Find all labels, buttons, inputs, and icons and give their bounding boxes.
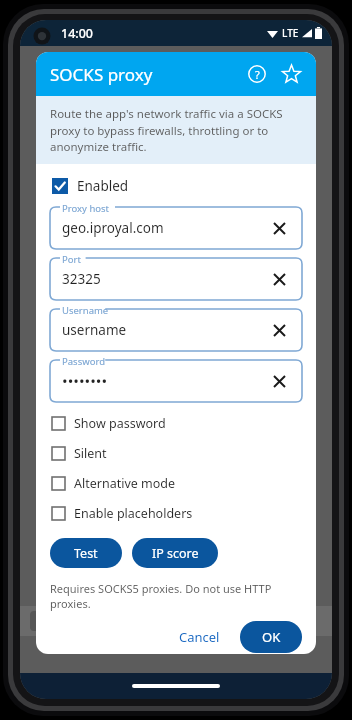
- staticText: HTTP proxies but the app checks for: [62, 614, 248, 629]
- button[interactable]: Clear Username: [266, 317, 292, 343]
- button[interactable]: Enabled: [50, 175, 302, 197]
- button[interactable]: Clear Port: [266, 266, 292, 292]
- staticText: Enable placeholders: [74, 505, 193, 522]
- staticText: Alternative mode: [74, 475, 176, 492]
- button[interactable]: Silent: [50, 443, 302, 464]
- staticText: IP score: [152, 545, 199, 562]
- staticText: LTE: [282, 26, 299, 40]
- button[interactable]: Clear Password: [266, 368, 292, 394]
- button[interactable]: IP score: [132, 538, 218, 568]
- button[interactable]: Test: [50, 538, 122, 568]
- staticText: Requires SOCKS5 proxies. Do not use HTTP…: [50, 581, 302, 611]
- staticText: OK: [262, 628, 281, 646]
- button[interactable]: Help: [240, 57, 274, 91]
- staticText: 14:00: [61, 25, 94, 42]
- staticText: Enabled: [77, 177, 129, 195]
- button[interactable]: Enable placeholders: [50, 503, 302, 524]
- staticText: Test: [74, 545, 98, 562]
- staticText: Proxy host: [62, 202, 109, 215]
- staticText: Username: [62, 304, 109, 317]
- staticText: Show password: [74, 415, 166, 432]
- staticText: ••••••••: [62, 371, 108, 391]
- staticText: geo.iproyal.com: [62, 219, 164, 237]
- button[interactable]: Cancel: [167, 620, 232, 654]
- button[interactable]: OK: [240, 621, 302, 653]
- staticText: 32325: [62, 270, 101, 288]
- button[interactable]: Favorite: [274, 57, 308, 91]
- staticText: Cancel: [179, 628, 220, 646]
- staticText: SOCKS proxy: [50, 63, 153, 86]
- button[interactable]: Clear Proxy host: [266, 215, 292, 241]
- button[interactable]: Alternative mode: [50, 473, 302, 494]
- staticText: Port: [62, 253, 81, 266]
- button[interactable]: Show password: [50, 413, 302, 434]
- staticText: Silent: [74, 445, 107, 462]
- staticText: Password: [62, 355, 105, 368]
- staticText: ?: [255, 67, 260, 82]
- staticText: Route the app's network traffic via a SO…: [50, 106, 302, 154]
- staticText: username: [62, 321, 127, 339]
